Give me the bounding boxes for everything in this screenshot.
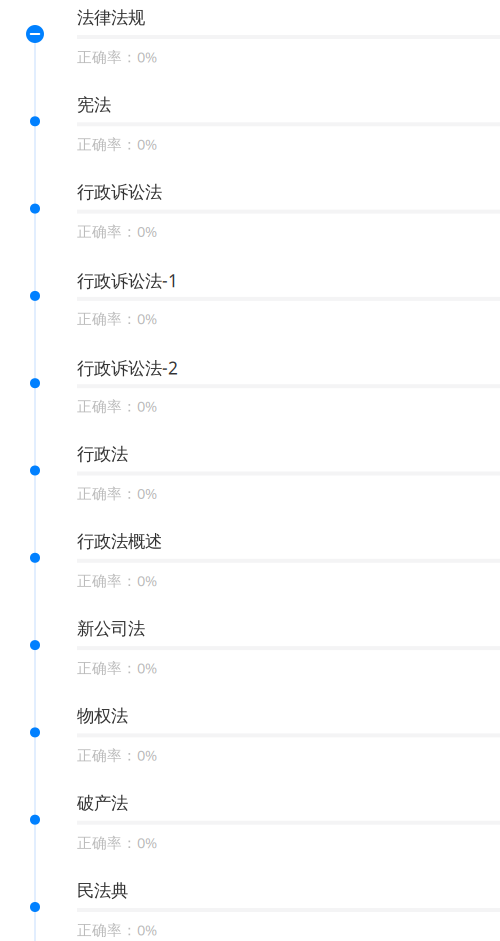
staticText: 正确率：0%: [77, 396, 157, 416]
staticText: 破产法: [77, 793, 128, 814]
staticText: 正确率：0%: [77, 745, 157, 765]
staticText: 新公司法: [77, 618, 145, 639]
staticText: 正确率：0%: [77, 658, 157, 678]
staticText: 民法典: [77, 880, 128, 901]
button[interactable]: 法律法规: [0, 0, 500, 87]
staticText: 行政法: [77, 443, 128, 465]
button[interactable]: 行政诉讼法-2: [0, 349, 500, 436]
button[interactable]: 行政诉讼法: [0, 175, 500, 262]
staticText: 宪法: [77, 94, 111, 116]
staticText: 正确率：0%: [77, 222, 157, 241]
staticText: 正确率：0%: [77, 134, 157, 154]
button[interactable]: 收起 法律法规: [26, 25, 44, 43]
staticText: 行政诉讼法-1: [77, 269, 178, 292]
staticText: 物权法: [77, 705, 128, 727]
staticText: 法律法规: [77, 7, 145, 28]
staticText: 正确率：0%: [77, 833, 157, 852]
button[interactable]: 行政法: [0, 436, 500, 524]
staticText: 正确率：0%: [77, 483, 157, 503]
button[interactable]: 物权法: [0, 698, 500, 786]
button[interactable]: 宪法: [0, 87, 500, 175]
button[interactable]: 行政法概述: [0, 524, 500, 611]
staticText: 行政法概述: [77, 531, 162, 552]
button[interactable]: 新公司法: [0, 611, 500, 698]
staticText: 正确率：0%: [77, 47, 157, 66]
staticText: 正确率：0%: [77, 309, 157, 328]
button[interactable]: 行政诉讼法-1: [0, 262, 500, 349]
staticText: 正确率：0%: [77, 571, 157, 590]
staticText: 正确率：0%: [77, 920, 157, 939]
staticText: 行政诉讼法: [77, 182, 162, 203]
button[interactable]: 民法典: [0, 873, 500, 941]
button[interactable]: 破产法: [0, 786, 500, 873]
staticText: 行政诉讼法-2: [77, 356, 178, 379]
